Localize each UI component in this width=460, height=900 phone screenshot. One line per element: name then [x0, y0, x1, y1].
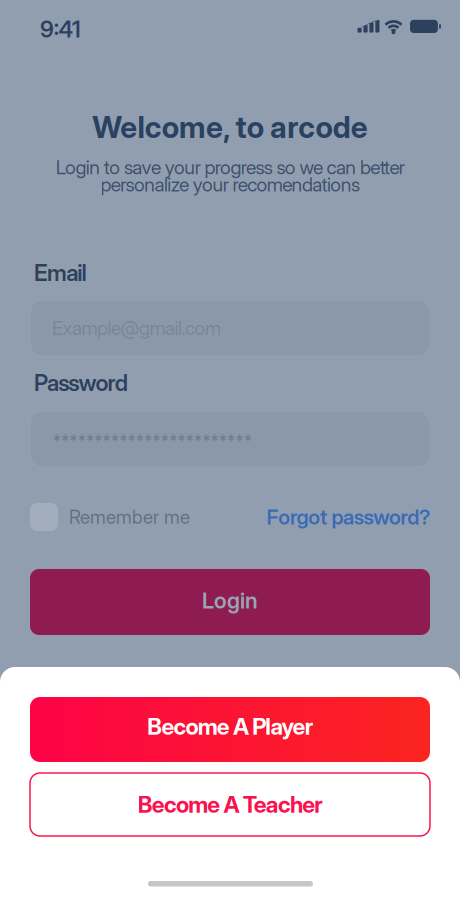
staticText: Example@gmail.com [52, 316, 221, 340]
staticText: Remember me [69, 506, 190, 528]
staticText: Become A Teacher [138, 791, 322, 818]
button[interactable]: ************************ [30, 411, 430, 467]
button[interactable]: Remember me [30, 503, 190, 531]
staticText: Become A Player [147, 713, 313, 740]
button[interactable]: Become A Teacher [30, 773, 430, 836]
staticText: Forgot password? [266, 504, 430, 529]
button[interactable]: Example@gmail.com [30, 300, 430, 356]
staticText: Login to save your progress so we can be… [55, 155, 404, 196]
staticText: Welcome, to arcode [92, 109, 368, 145]
staticText: Email [34, 259, 86, 286]
button[interactable]: Forgot password? [266, 504, 430, 529]
button[interactable]: Become A Player [30, 697, 430, 762]
staticText: ************************ [53, 431, 252, 450]
button[interactable]: Login [30, 569, 430, 635]
staticText: 9:41 [40, 15, 81, 43]
staticText: Password [34, 369, 128, 396]
staticText: Login [202, 587, 258, 614]
